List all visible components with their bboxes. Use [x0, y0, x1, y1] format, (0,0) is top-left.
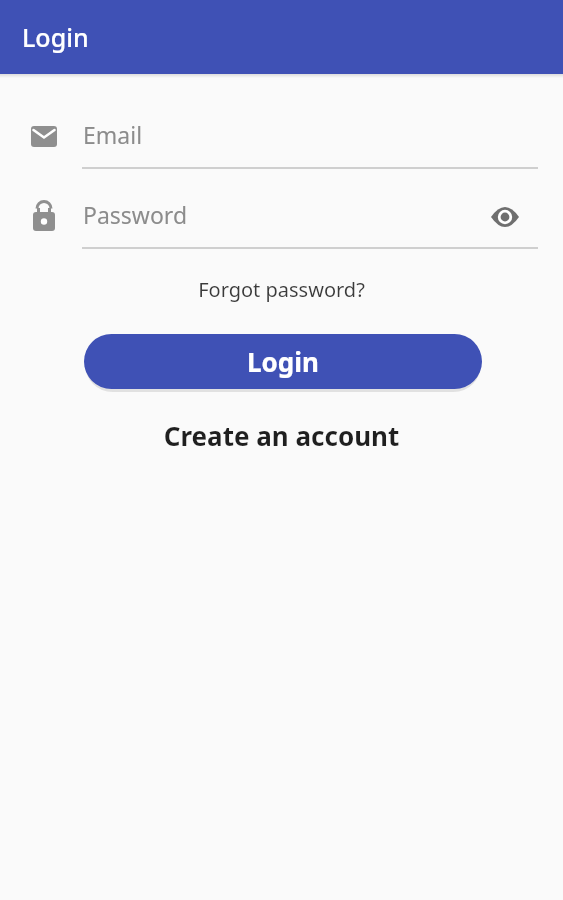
staticText: Login [247, 344, 319, 379]
button[interactable]: Create an account [0, 418, 563, 453]
staticText: Password [83, 199, 188, 230]
button[interactable] [491, 206, 519, 228]
staticText: Email [83, 119, 143, 150]
button[interactable]: Login [84, 334, 482, 389]
staticText: Login [22, 20, 89, 54]
button[interactable]: Forgot password? [0, 276, 563, 303]
